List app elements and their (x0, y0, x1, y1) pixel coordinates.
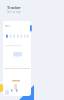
staticText: Tracker (7, 5, 21, 10)
staticText: Mon (4, 24, 10, 28)
staticText: Select day (7, 10, 20, 14)
